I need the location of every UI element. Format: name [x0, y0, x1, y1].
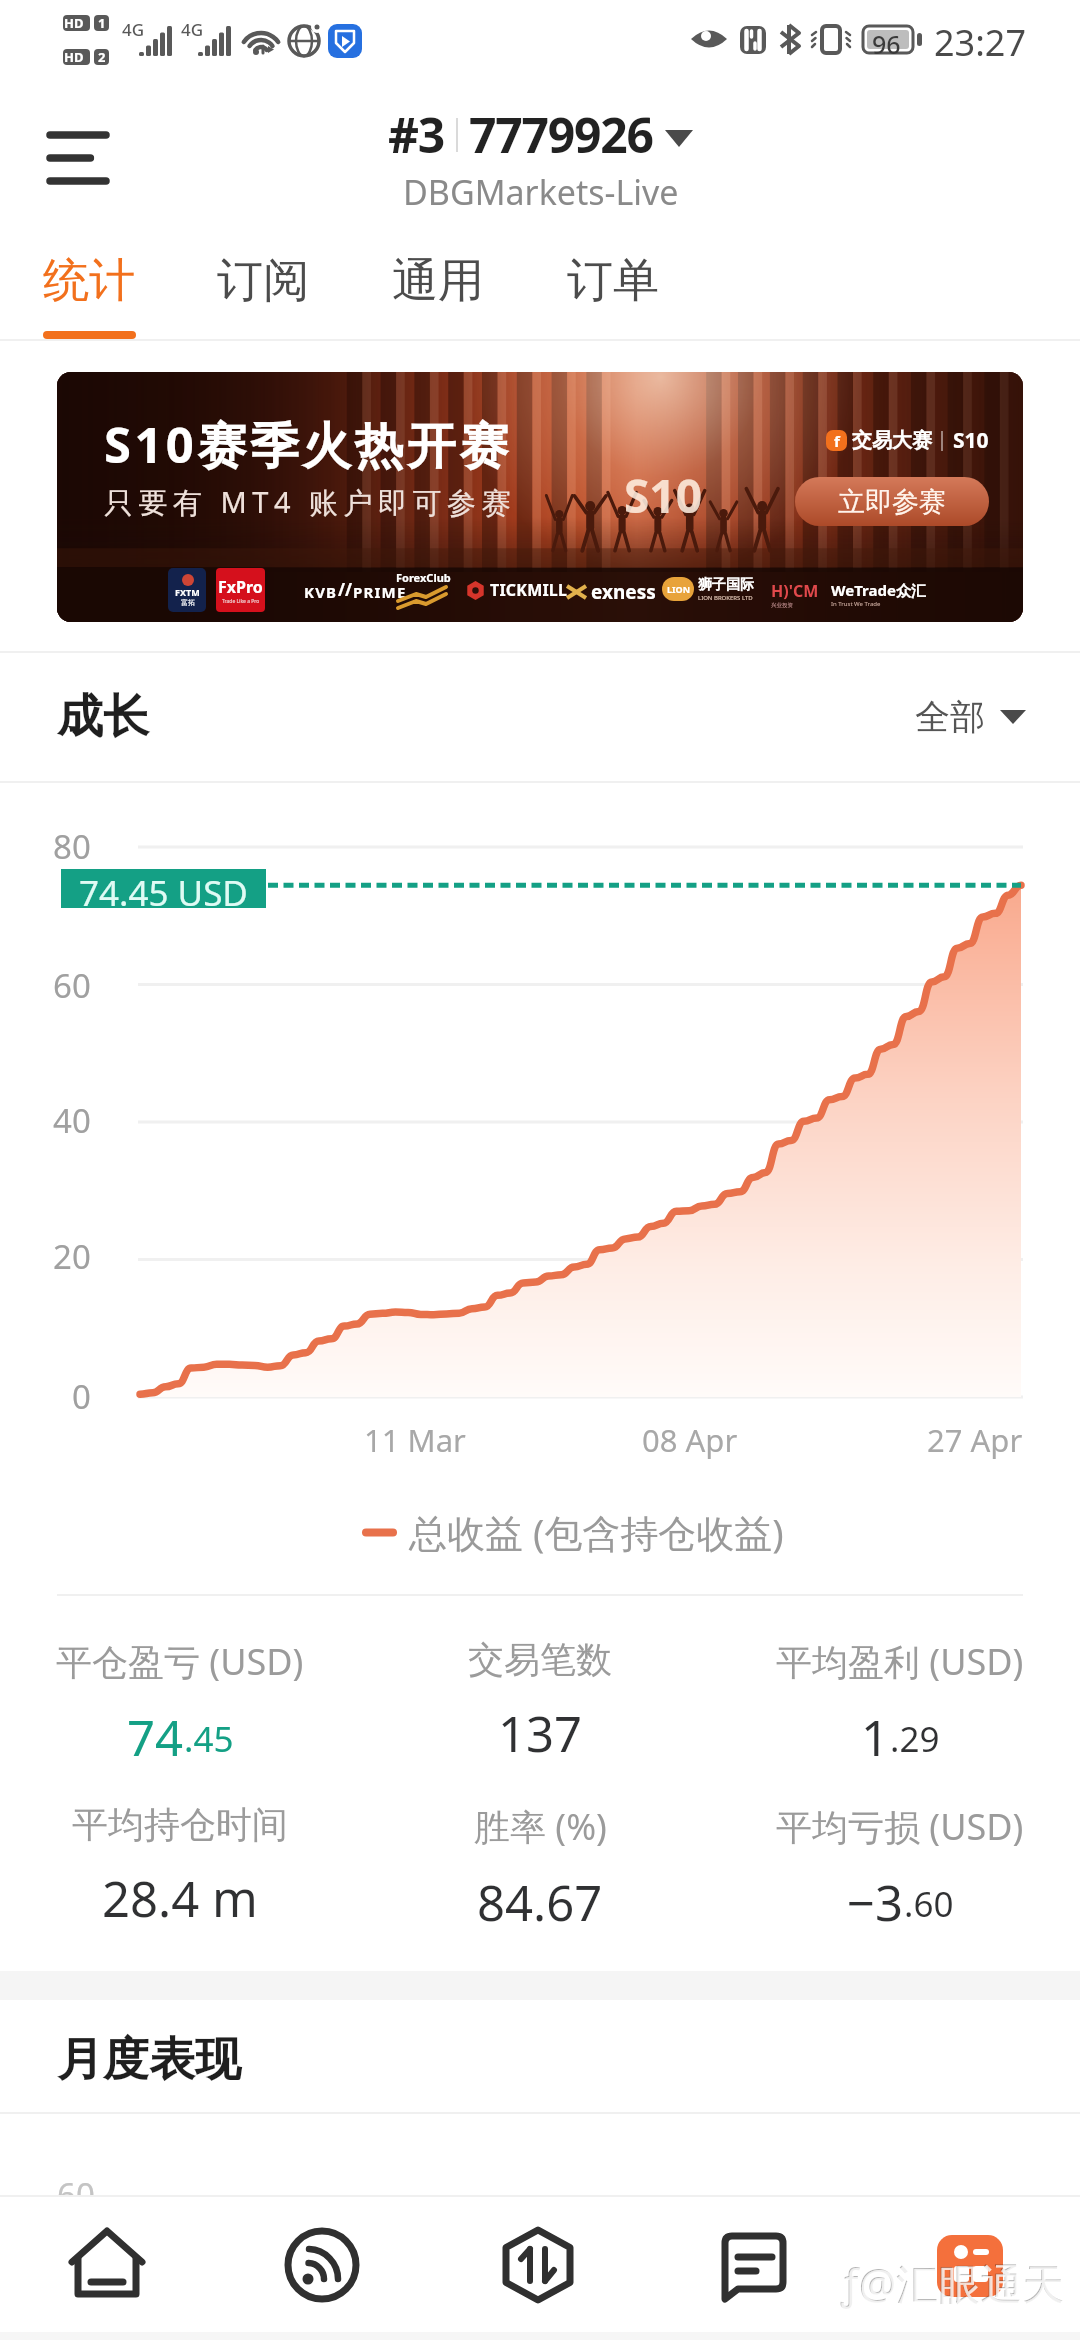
staticText: f	[834, 431, 840, 451]
staticText: ForexClub	[396, 570, 451, 585]
staticText: WeTrade众汇	[831, 580, 926, 600]
button[interactable]: S10 赛季火热开赛 banner	[57, 372, 1023, 622]
button[interactable]: Menu	[20, 108, 136, 208]
button[interactable]: 全部	[915, 695, 1026, 739]
button[interactable]: 立即参赛	[795, 477, 989, 526]
staticText: 4G	[181, 18, 204, 41]
staticText: 平仓盈亏 (USD)	[56, 1637, 304, 1686]
staticText: HD	[64, 48, 84, 66]
staticText: 胜率 (%)	[474, 1802, 607, 1851]
staticText: 137	[498, 1700, 583, 1765]
staticText: KVB	[304, 582, 338, 602]
staticText: .29	[890, 1715, 940, 1763]
staticText: −3	[847, 1869, 904, 1930]
staticText: 2	[98, 48, 106, 66]
staticText: 通用	[392, 252, 484, 310]
staticText: S10	[624, 464, 702, 527]
staticText: S10	[953, 426, 989, 455]
staticText: 11 Mar	[364, 1419, 466, 1461]
staticText: LION	[667, 583, 690, 595]
staticText: 只要有 MT4 账户即可参赛	[104, 482, 517, 522]
staticText: 总收益 (包含持仓收益)	[409, 1506, 784, 1558]
button[interactable]: 通用	[364, 240, 512, 339]
staticText: .60	[904, 1880, 954, 1928]
staticText: H)'CM	[771, 580, 819, 602]
staticText: #3	[388, 102, 445, 167]
staticText: 27 Apr	[927, 1419, 1023, 1461]
staticText: 订阅	[217, 252, 309, 310]
staticText: 平均亏损 (USD)	[776, 1802, 1024, 1851]
staticText: 全部	[915, 695, 985, 739]
staticText: 4G	[122, 18, 145, 41]
staticText: In Trust We Trade	[831, 600, 881, 608]
button[interactable]: #3	[388, 102, 693, 215]
button[interactable]: 订单	[539, 240, 687, 339]
staticText: 平均盈利 (USD)	[776, 1637, 1024, 1686]
staticText: LION BROKERS LTD	[698, 594, 753, 602]
staticText: FXTM	[175, 586, 200, 598]
staticText: 立即参赛	[838, 485, 946, 519]
staticText: PRIME	[353, 582, 407, 602]
button[interactable]: Profile	[862, 2197, 1078, 2332]
staticText: 80	[53, 824, 91, 869]
staticText: 84.67	[477, 1869, 603, 1930]
staticText: HD	[64, 14, 84, 32]
staticText: 月度表现	[57, 2031, 241, 2089]
staticText: 交易大赛	[852, 428, 932, 453]
staticText: 96	[872, 27, 901, 61]
staticText: 7779926	[469, 102, 653, 167]
staticText: 40	[53, 1098, 91, 1143]
button[interactable]: Signals	[214, 2197, 430, 2332]
staticText: 富拓	[181, 598, 195, 607]
button[interactable]: 统计	[15, 240, 163, 339]
staticText: 60	[57, 2172, 95, 2217]
staticText: 74.45 USD	[79, 869, 248, 908]
staticText: 狮子国际	[698, 576, 754, 594]
button[interactable]: Messages	[646, 2197, 862, 2332]
staticText: exness	[591, 579, 656, 605]
staticText: DBGMarkets-Live	[403, 169, 679, 215]
staticText: 28.4 m	[102, 1865, 258, 1930]
staticText: 0	[72, 1374, 91, 1419]
button[interactable]: Trade	[430, 2197, 646, 2332]
staticText: ƒ@汇眼通天	[841, 2254, 1065, 2311]
button[interactable]: Home	[0, 2197, 215, 2332]
staticText: 20	[53, 1234, 91, 1279]
staticText: 兴业投资	[771, 602, 793, 609]
staticText: 74	[127, 1704, 184, 1765]
staticText: 1	[861, 1704, 890, 1765]
staticText: 08 Apr	[642, 1419, 738, 1461]
staticText: 交易笔数	[468, 1637, 612, 1682]
staticText: 成长	[57, 688, 149, 746]
staticText: 23:27	[934, 18, 1027, 67]
staticText: 统计	[43, 252, 135, 310]
staticText: TICKMILL	[490, 579, 568, 601]
staticText: 60	[53, 963, 91, 1008]
staticText: FxPro	[218, 576, 263, 598]
button[interactable]: 订阅	[189, 240, 337, 339]
staticText: .45	[184, 1715, 234, 1763]
staticText: //	[338, 578, 353, 601]
staticText: 订单	[567, 252, 659, 310]
staticText: 1	[98, 14, 106, 32]
staticText: ƒ@汇眼通天	[842, 2255, 1066, 2312]
staticText: S10赛季火热开赛	[104, 411, 512, 478]
staticText: Trade Like a Pro	[222, 598, 260, 605]
staticText: 平均持仓时间	[72, 1802, 288, 1847]
